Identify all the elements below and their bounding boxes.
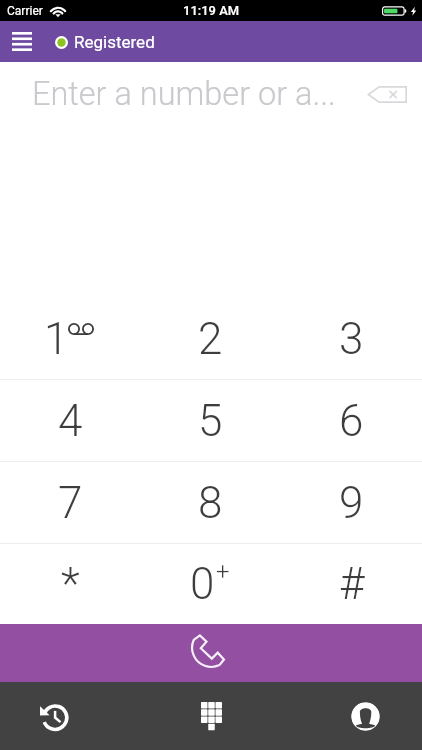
staticText: 5 bbox=[198, 395, 223, 447]
staticText: 8 bbox=[198, 477, 223, 529]
button[interactable]: 7 bbox=[0, 462, 140, 543]
button[interactable]: Keypad bbox=[178, 682, 244, 750]
button[interactable]: 2 bbox=[140, 298, 281, 379]
button[interactable]: Call bbox=[0, 624, 422, 682]
staticText: 7 bbox=[58, 477, 83, 529]
staticText: * bbox=[61, 558, 80, 610]
button[interactable]: * bbox=[0, 544, 140, 624]
staticText: Registered bbox=[74, 32, 155, 52]
button[interactable]: Recents bbox=[20, 682, 86, 750]
staticText: Carrier bbox=[7, 4, 43, 18]
staticText: 3 bbox=[339, 313, 364, 365]
button[interactable]: 9 bbox=[281, 462, 422, 543]
staticText: + bbox=[216, 558, 230, 586]
button[interactable]: 8 bbox=[140, 462, 281, 543]
button[interactable]: # bbox=[281, 544, 422, 624]
staticText: 11:19 AM bbox=[183, 3, 240, 18]
staticText: 9 bbox=[339, 477, 364, 529]
staticText: # bbox=[339, 558, 365, 610]
staticText: 6 bbox=[339, 395, 364, 447]
button[interactable]: Contacts bbox=[332, 682, 398, 750]
staticText: 2 bbox=[198, 313, 223, 365]
button[interactable]: 0 bbox=[140, 544, 281, 624]
staticText: 0 bbox=[190, 558, 215, 610]
button[interactable]: Backspace bbox=[366, 65, 422, 123]
button[interactable]: 5 bbox=[140, 380, 281, 461]
staticText: 4 bbox=[58, 395, 83, 447]
staticText: Enter a number or a... bbox=[32, 75, 336, 113]
button[interactable]: 4 bbox=[0, 380, 140, 461]
staticText: 1 bbox=[44, 313, 69, 365]
button[interactable]: 1 bbox=[0, 298, 140, 379]
button[interactable]: Open navigation menu bbox=[0, 21, 43, 62]
button[interactable]: 6 bbox=[281, 380, 422, 461]
button[interactable]: 3 bbox=[281, 298, 422, 379]
